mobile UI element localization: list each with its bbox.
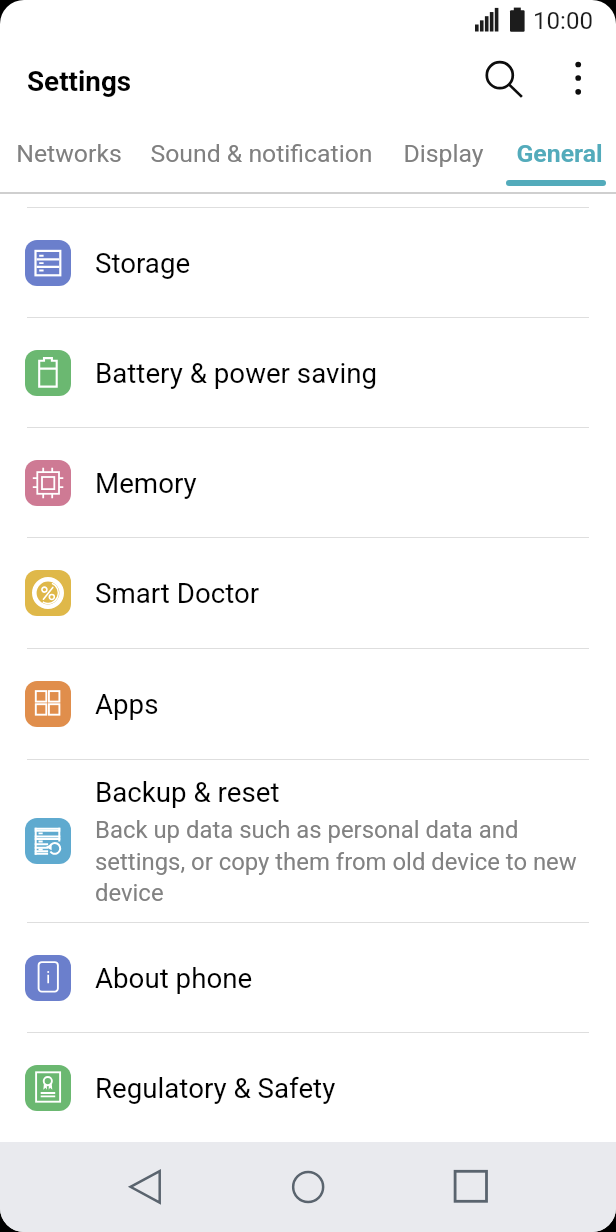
button[interactable]: Recent apps	[430, 1147, 510, 1227]
staticText: Settings	[27, 65, 132, 98]
staticText: Memory	[95, 467, 197, 499]
staticText: General	[516, 139, 603, 168]
staticText: 10:00	[533, 7, 593, 35]
button[interactable]: More options	[550, 44, 606, 100]
staticText: About phone	[95, 962, 253, 994]
button[interactable]: Back	[105, 1147, 185, 1227]
button[interactable]: Memory	[0, 428, 616, 537]
staticText: Battery & power saving	[95, 357, 377, 389]
staticText: Apps	[95, 688, 159, 720]
staticText: Sound & notification	[150, 139, 373, 168]
staticText: Smart Doctor	[95, 577, 260, 609]
staticText: Backup & reset	[95, 776, 280, 808]
button[interactable]: Smart Doctor	[0, 538, 616, 648]
staticText: Storage	[95, 247, 191, 279]
button[interactable]: Display	[384, 120, 502, 186]
button[interactable]: Battery & power saving	[0, 318, 616, 427]
button[interactable]: About phone	[0, 923, 616, 1032]
button[interactable]: Regulatory & Safety	[0, 1033, 616, 1142]
button[interactable]: Search	[472, 47, 528, 103]
staticText: Networks	[16, 139, 122, 168]
staticText: Regulatory & Safety	[95, 1072, 336, 1104]
button[interactable]: Backup & reset	[0, 760, 616, 922]
button[interactable]: Storage	[0, 208, 616, 317]
button[interactable]: Sound & notification	[138, 120, 384, 186]
button[interactable]: Networks	[0, 120, 138, 186]
button[interactable]: Apps	[0, 649, 616, 759]
button[interactable]: General	[502, 120, 616, 186]
staticText: Display	[403, 139, 484, 168]
button[interactable]: Home	[268, 1147, 348, 1227]
staticText: Back up data such as personal data and s…	[95, 816, 582, 907]
